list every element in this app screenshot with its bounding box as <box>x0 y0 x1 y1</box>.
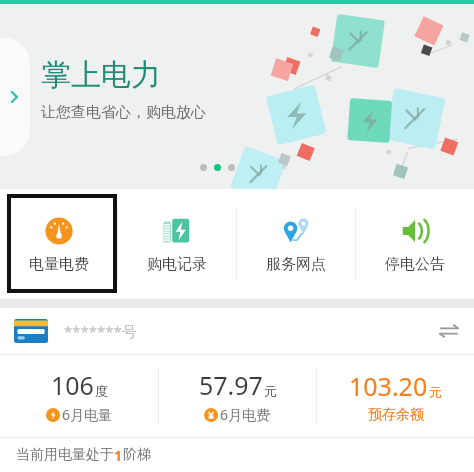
button[interactable]: 电量电费 <box>0 189 117 299</box>
staticText: *******号 <box>64 321 137 341</box>
staticText: 57.97 <box>199 368 263 402</box>
staticText: 购电记录 <box>147 255 207 274</box>
staticText: 阶梯 <box>123 446 151 464</box>
staticText: 当前用电量处于 <box>16 446 114 464</box>
button[interactable]: 购电记录 <box>118 189 236 299</box>
button[interactable]: 服务网点 <box>237 189 355 299</box>
staticText: 元 <box>264 383 277 399</box>
staticText: 预存余额 <box>368 406 424 424</box>
staticText: 103.20 <box>349 369 428 403</box>
staticText: 6月电量 <box>62 405 113 424</box>
staticText: 6月电费 <box>220 405 271 424</box>
staticText: 掌上电力 <box>41 56 161 94</box>
staticText: 度 <box>95 383 108 399</box>
staticText: 1 <box>114 446 123 465</box>
button[interactable]: 103.20 <box>317 355 474 437</box>
button[interactable]: 106 <box>0 355 158 437</box>
button[interactable]: Account card <box>0 308 474 354</box>
other: Account card <box>14 319 48 343</box>
button[interactable]: 57.97 <box>159 355 316 437</box>
staticText: 106 <box>51 368 94 402</box>
staticText: 服务网点 <box>266 255 326 274</box>
staticText: 元 <box>429 384 442 400</box>
button[interactable]: 停电公告 <box>356 189 474 299</box>
staticText: 电量电费 <box>29 255 89 274</box>
other: Switch account <box>438 320 460 342</box>
staticText: 让您查电省心，购电放心 <box>41 103 206 122</box>
staticText: 停电公告 <box>385 255 445 274</box>
